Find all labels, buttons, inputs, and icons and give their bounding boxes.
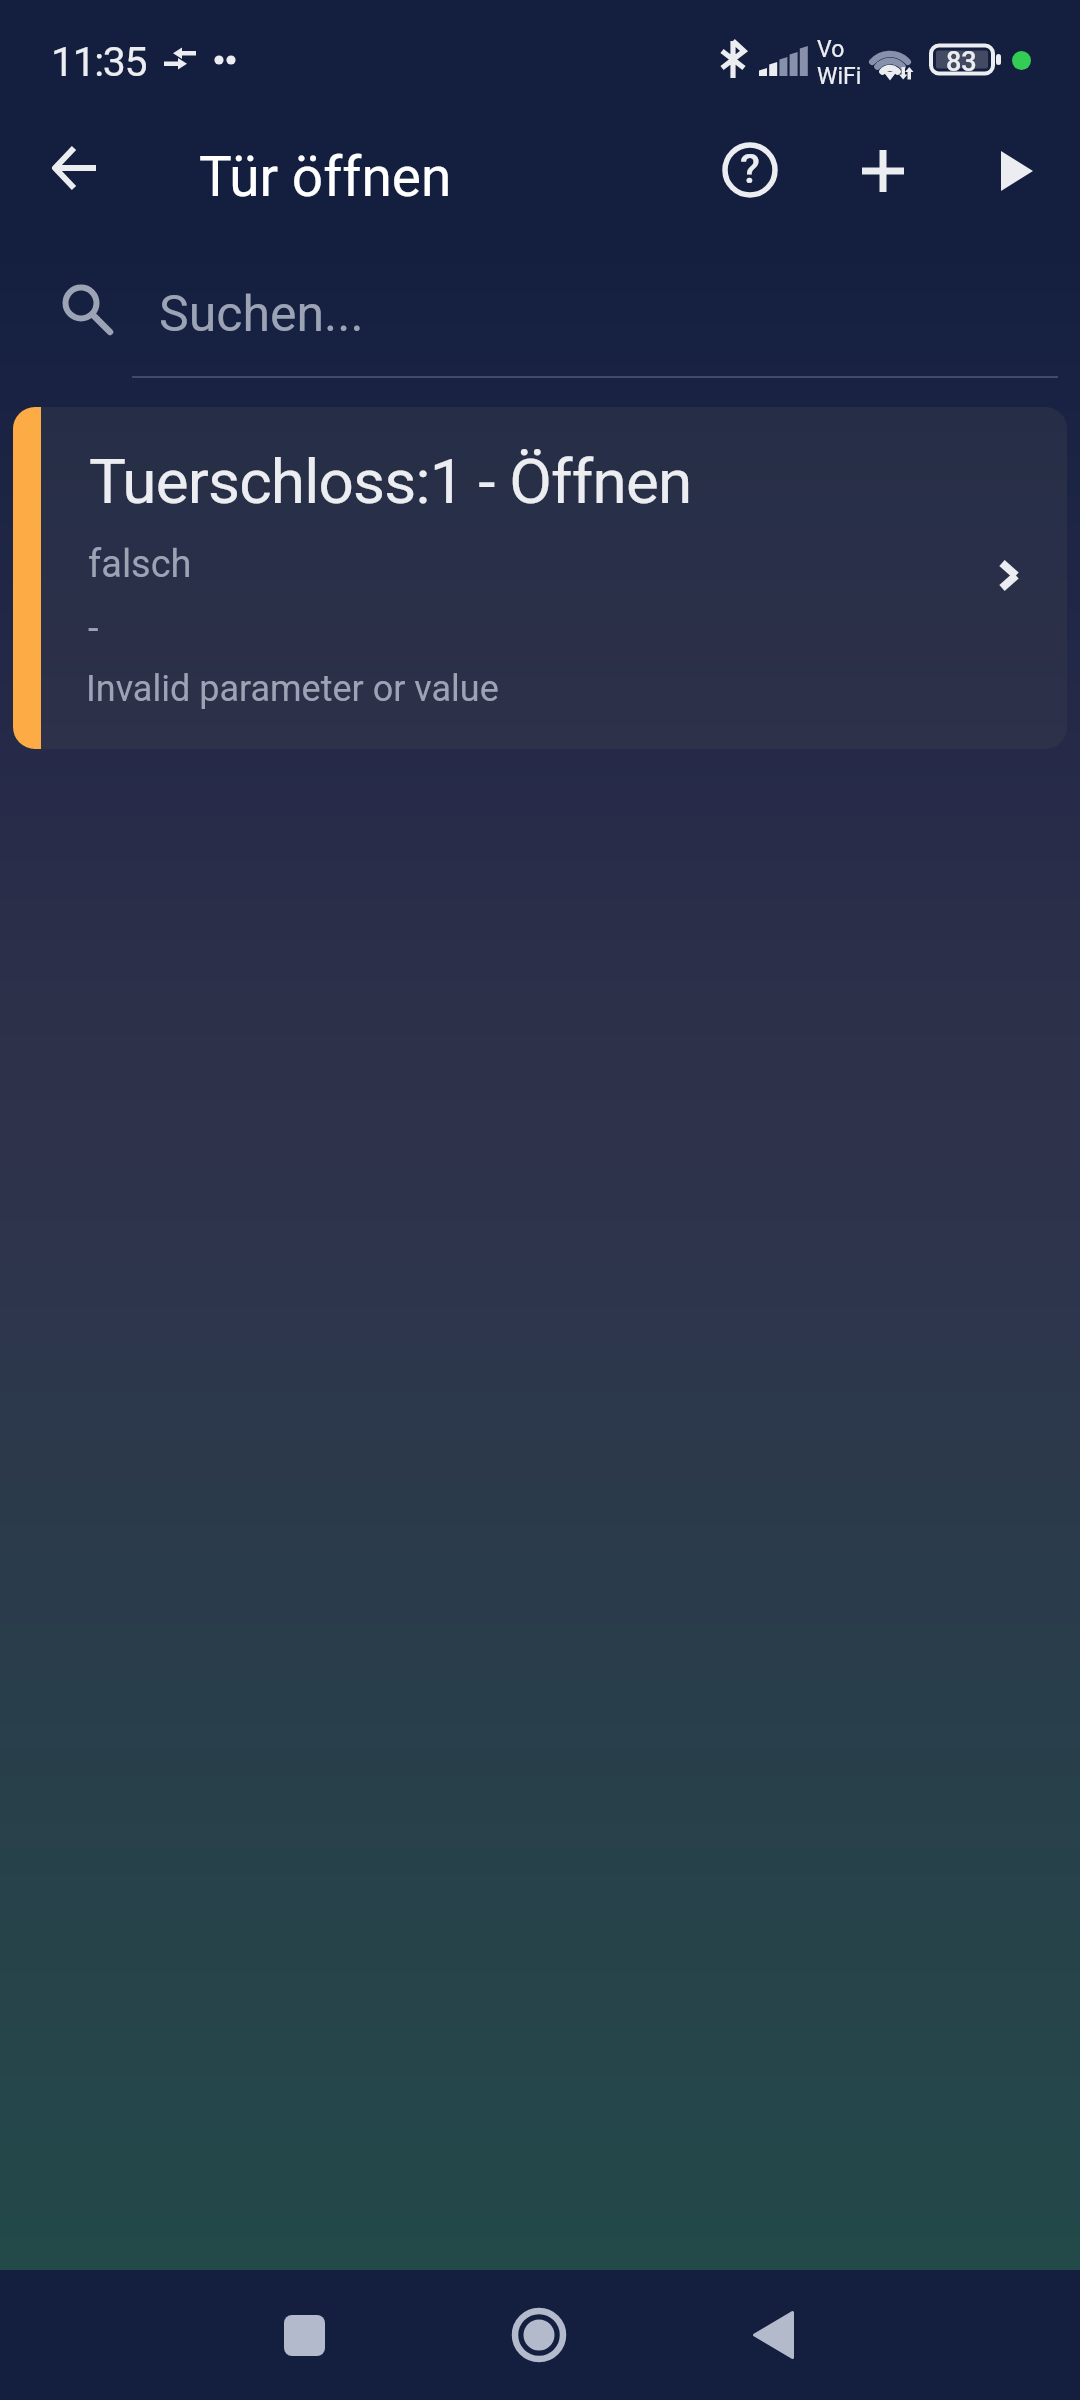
staticText: falsch [88, 542, 192, 587]
button[interactable]: Tuerschloss:1 - Öffnen [13, 407, 1067, 749]
staticText: Tuerschloss:1 - Öffnen [89, 445, 692, 518]
button[interactable]: Add [839, 127, 927, 215]
staticText: Tür öffnen [199, 145, 452, 209]
button[interactable]: Home [484, 2280, 594, 2390]
button[interactable]: Suchen... [0, 246, 1080, 374]
staticText: 11:35 [51, 38, 147, 86]
staticText: Vo [817, 36, 845, 63]
staticText: - [88, 606, 99, 651]
staticText: Suchen... [159, 285, 364, 344]
button[interactable]: Run [974, 127, 1062, 215]
button[interactable]: Recent apps [249, 2280, 359, 2390]
staticText: 83 [946, 46, 977, 78]
staticText: Invalid parameter or value [86, 668, 499, 710]
button[interactable]: Help [706, 126, 794, 214]
button[interactable]: Back [719, 2280, 829, 2390]
staticText: ? [740, 145, 760, 193]
staticText: WiFi [817, 63, 862, 90]
button[interactable]: Back [31, 124, 119, 212]
